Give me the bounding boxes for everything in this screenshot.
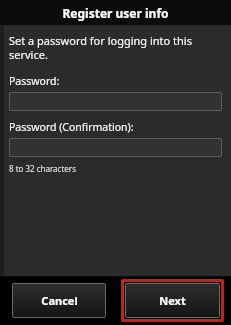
staticText: Cancel: [41, 293, 78, 308]
staticText: Set a password for logging into this ser…: [9, 33, 192, 62]
staticText: Next: [159, 293, 186, 308]
button[interactable]: [9, 138, 222, 157]
staticText: 8 to 32 characters: [9, 163, 76, 174]
staticText: Password:: [9, 74, 60, 88]
button[interactable]: Cancel: [12, 283, 106, 318]
button[interactable]: [9, 92, 222, 111]
button[interactable]: Next: [125, 283, 220, 318]
staticText: Register user info: [62, 5, 169, 21]
staticText: Password (Confirmation):: [9, 120, 134, 134]
